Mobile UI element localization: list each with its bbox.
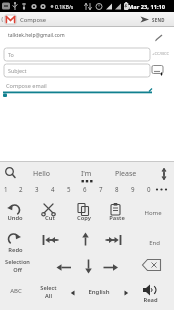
- button[interactable]: [35, 282, 69, 310]
- button[interactable]: [0, 182, 15, 197]
- staticText: 5: [67, 185, 71, 193]
- button[interactable]: [150, 48, 174, 61]
- staticText: 6: [83, 185, 87, 193]
- staticText: Read: [143, 296, 158, 304]
- staticText: 3: [35, 185, 39, 193]
- button[interactable]: [35, 254, 69, 282]
- button[interactable]: [103, 282, 137, 310]
- button[interactable]: [70, 226, 104, 254]
- staticText: 8: [115, 185, 119, 193]
- staticText: Cut: [45, 214, 55, 222]
- button[interactable]: [95, 182, 110, 197]
- staticText: +CC/BCC: [152, 51, 170, 57]
- button[interactable]: [16, 182, 31, 197]
- button[interactable]: [0, 198, 34, 226]
- staticText: 1: [4, 185, 8, 193]
- staticText: Subject: [8, 67, 27, 74]
- staticText: Undo: [7, 214, 23, 222]
- staticText: 0: [147, 185, 151, 193]
- staticText: 9: [131, 185, 135, 193]
- staticText: SEND: [152, 17, 165, 23]
- staticText: Mar 23, 11:10: [128, 3, 166, 11]
- button[interactable]: [137, 198, 171, 226]
- button[interactable]: [4, 64, 150, 77]
- staticText: ABC: [10, 287, 22, 295]
- button[interactable]: [110, 164, 142, 180]
- button[interactable]: [103, 254, 137, 282]
- button[interactable]: [127, 182, 142, 197]
- staticText: End: [149, 239, 160, 247]
- staticText: 4: [51, 185, 55, 193]
- staticText: 2: [19, 185, 23, 193]
- staticText: Home: [144, 209, 162, 217]
- button[interactable]: [137, 254, 171, 282]
- staticText: Compose: [20, 16, 47, 24]
- button[interactable]: [64, 182, 79, 197]
- staticText: 0.1KB/s: [55, 3, 74, 10]
- button[interactable]: [0, 226, 34, 254]
- staticText: English: [88, 288, 110, 296]
- button[interactable]: [137, 282, 171, 310]
- staticText: Please: [115, 169, 137, 179]
- button[interactable]: [0, 282, 34, 310]
- button[interactable]: [74, 164, 96, 180]
- button[interactable]: [156, 164, 172, 180]
- staticText: 7: [99, 185, 103, 193]
- staticText: Hello: [33, 169, 50, 179]
- staticText: I'm: [81, 169, 92, 179]
- button[interactable]: [70, 282, 104, 310]
- button[interactable]: [48, 182, 63, 197]
- button[interactable]: [103, 226, 137, 254]
- button[interactable]: [126, 13, 172, 26]
- button[interactable]: [2, 164, 18, 180]
- button[interactable]: [4, 48, 150, 61]
- staticText: Copy: [77, 214, 91, 222]
- staticText: Select All: [40, 284, 57, 299]
- button[interactable]: [150, 63, 170, 77]
- button[interactable]: [28, 164, 60, 180]
- button[interactable]: [35, 226, 69, 254]
- button[interactable]: [137, 226, 171, 254]
- button[interactable]: [70, 198, 104, 226]
- staticText: To: [8, 51, 14, 58]
- button[interactable]: [70, 254, 104, 282]
- staticText: talktek.help@gmail.com: [8, 32, 65, 39]
- staticText: Paste: [109, 214, 125, 222]
- button[interactable]: [0, 254, 34, 282]
- staticText: Redo: [8, 246, 23, 254]
- staticText: Compose email: [6, 82, 47, 90]
- button[interactable]: [32, 182, 47, 197]
- button[interactable]: [103, 198, 137, 226]
- button[interactable]: [143, 182, 158, 197]
- staticText: Selection Off: [5, 258, 30, 273]
- button[interactable]: [2, 80, 152, 96]
- button[interactable]: [35, 198, 69, 226]
- button[interactable]: [111, 182, 126, 197]
- button[interactable]: [80, 182, 95, 197]
